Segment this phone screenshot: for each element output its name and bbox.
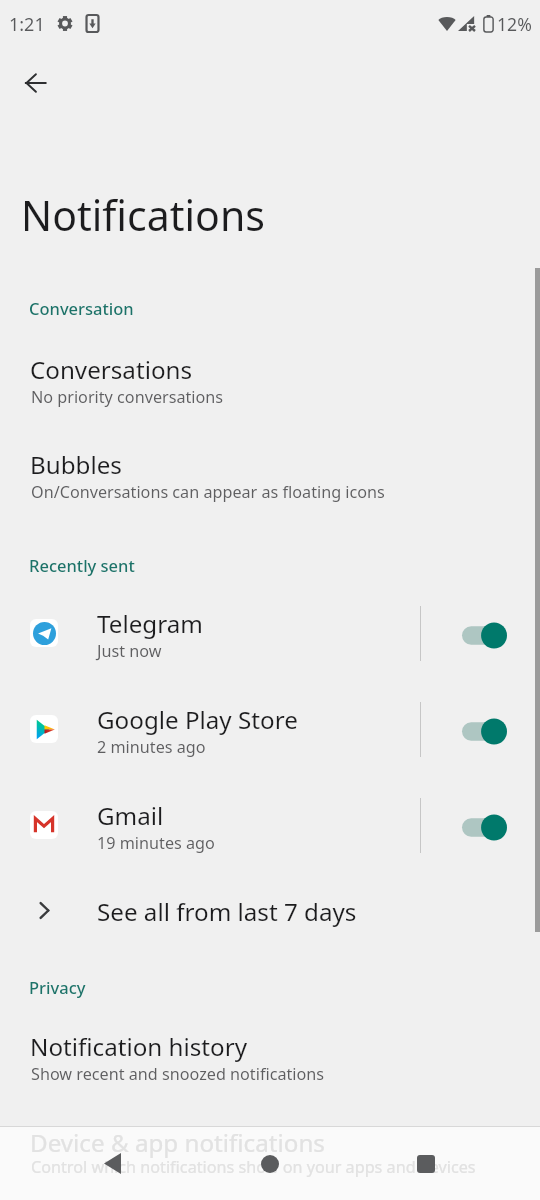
button[interactable]: Back bbox=[72, 1127, 152, 1200]
staticText: 1:21 bbox=[9, 12, 45, 37]
staticText: Just now bbox=[97, 640, 162, 662]
staticText: Privacy bbox=[29, 976, 86, 998]
staticText: Device & app notifications bbox=[30, 1126, 325, 1159]
button[interactable]: See all from last 7 days bbox=[0, 879, 540, 975]
button[interactable]: Conversations bbox=[0, 333, 540, 421]
button[interactable]: Google Play Store bbox=[0, 687, 540, 783]
button[interactable]: Home bbox=[230, 1127, 310, 1200]
button[interactable]: Gmail bbox=[0, 783, 540, 879]
staticText: Conversations bbox=[30, 353, 193, 386]
staticText: Google Play Store bbox=[97, 703, 298, 736]
button[interactable]: Notification history bbox=[0, 1010, 540, 1098]
staticText: Gmail bbox=[97, 799, 164, 832]
button[interactable]: Toggle notifications for Google Play Sto… bbox=[450, 707, 518, 755]
staticText: Recently sent bbox=[29, 554, 135, 576]
staticText: Control which notifications show on your… bbox=[31, 1156, 476, 1178]
button[interactable]: Toggle notifications for Gmail bbox=[450, 803, 518, 851]
staticText: 2 minutes ago bbox=[97, 736, 206, 758]
staticText: Conversation bbox=[29, 297, 134, 319]
button[interactable]: Recent apps bbox=[386, 1127, 466, 1200]
button[interactable]: Toggle notifications for Telegram bbox=[450, 611, 518, 659]
staticText: Bubbles bbox=[30, 448, 122, 481]
staticText: Notification history bbox=[30, 1030, 248, 1063]
staticText: 12% bbox=[497, 12, 532, 36]
staticText: Notifications bbox=[21, 187, 265, 243]
staticText: On/Conversations can appear as floating … bbox=[31, 481, 385, 503]
button[interactable]: Navigate up bbox=[12, 59, 59, 106]
button[interactable]: Telegram bbox=[0, 591, 540, 687]
staticText: Show recent and snoozed notifications bbox=[31, 1063, 325, 1085]
staticText: Telegram bbox=[97, 607, 203, 640]
button[interactable]: Bubbles bbox=[0, 428, 540, 516]
staticText: 19 minutes ago bbox=[97, 832, 215, 854]
staticText: See all from last 7 days bbox=[97, 895, 357, 928]
staticText: No priority conversations bbox=[31, 386, 224, 408]
